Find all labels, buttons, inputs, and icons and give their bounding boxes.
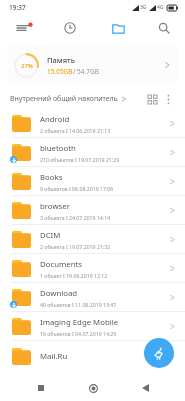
button[interactable]: Recents [15, 375, 67, 401]
button[interactable]: browser [0, 196, 185, 225]
staticText: 4G [157, 4, 164, 11]
staticText: Documents [40, 259, 83, 270]
button[interactable]: 27% [7, 45, 178, 85]
button[interactable]: DCIM [0, 225, 185, 254]
button[interactable]: Imaging Edge Mobile [0, 312, 185, 341]
button[interactable]: Books [0, 167, 185, 196]
button[interactable]: Documents [0, 254, 185, 283]
button[interactable]: Внутренний общий накопитель [10, 94, 127, 104]
staticText: 40 объектов I 11.08.2019 13:47 [40, 301, 117, 308]
staticText: 27% [21, 62, 33, 70]
staticText: DCIM [40, 230, 61, 241]
staticText: / 54.7GB [73, 67, 99, 76]
button[interactable]: Back [119, 375, 171, 401]
staticText: Mail.Ru [40, 351, 68, 362]
staticText: 15.05GB [47, 67, 73, 76]
staticText: bluetooth [40, 143, 76, 154]
button[interactable]: Android [0, 109, 185, 138]
staticText: Android [40, 114, 70, 125]
button[interactable]: Download [0, 283, 185, 312]
button[interactable]: Recent [46, 14, 94, 42]
staticText: Память [47, 55, 75, 65]
button[interactable]: More options [161, 92, 175, 106]
staticText: 1 объект I 19.06.2019 12:12 [40, 272, 108, 279]
staticText: 19:37 [9, 3, 26, 12]
staticText: Download [40, 288, 78, 299]
button[interactable]: Mail.Ru [0, 341, 185, 371]
staticText: 2 объекта I 14.06.2019 21:13 [40, 127, 111, 134]
button[interactable]: Home [67, 375, 119, 401]
staticText: 16 объектов I 04.07.2019 14:29 [40, 330, 117, 337]
staticText: Books [40, 172, 63, 183]
staticText: browser [40, 201, 70, 212]
staticText: 3G [140, 4, 147, 11]
button[interactable]: Grid view [143, 90, 161, 108]
button[interactable]: Clean up storage [144, 338, 174, 368]
button[interactable]: Search [143, 14, 185, 42]
button[interactable]: Menu [0, 14, 46, 42]
button[interactable]: bluetooth [0, 138, 185, 167]
staticText: 210 объектов I 19.07.2019 21:29 [40, 156, 120, 163]
button[interactable]: Files [94, 14, 143, 42]
staticText: 9 объектов I 06.08.2019 17:06 [40, 185, 114, 192]
staticText: Imaging Edge Mobile [40, 317, 119, 328]
staticText: Внутренний общий накопитель [10, 94, 118, 104]
staticText: 2 объекта I 19.07.2019 21:32 [40, 243, 111, 250]
staticText: 3 объекта I 24.07.2019 14:14 [40, 214, 111, 221]
